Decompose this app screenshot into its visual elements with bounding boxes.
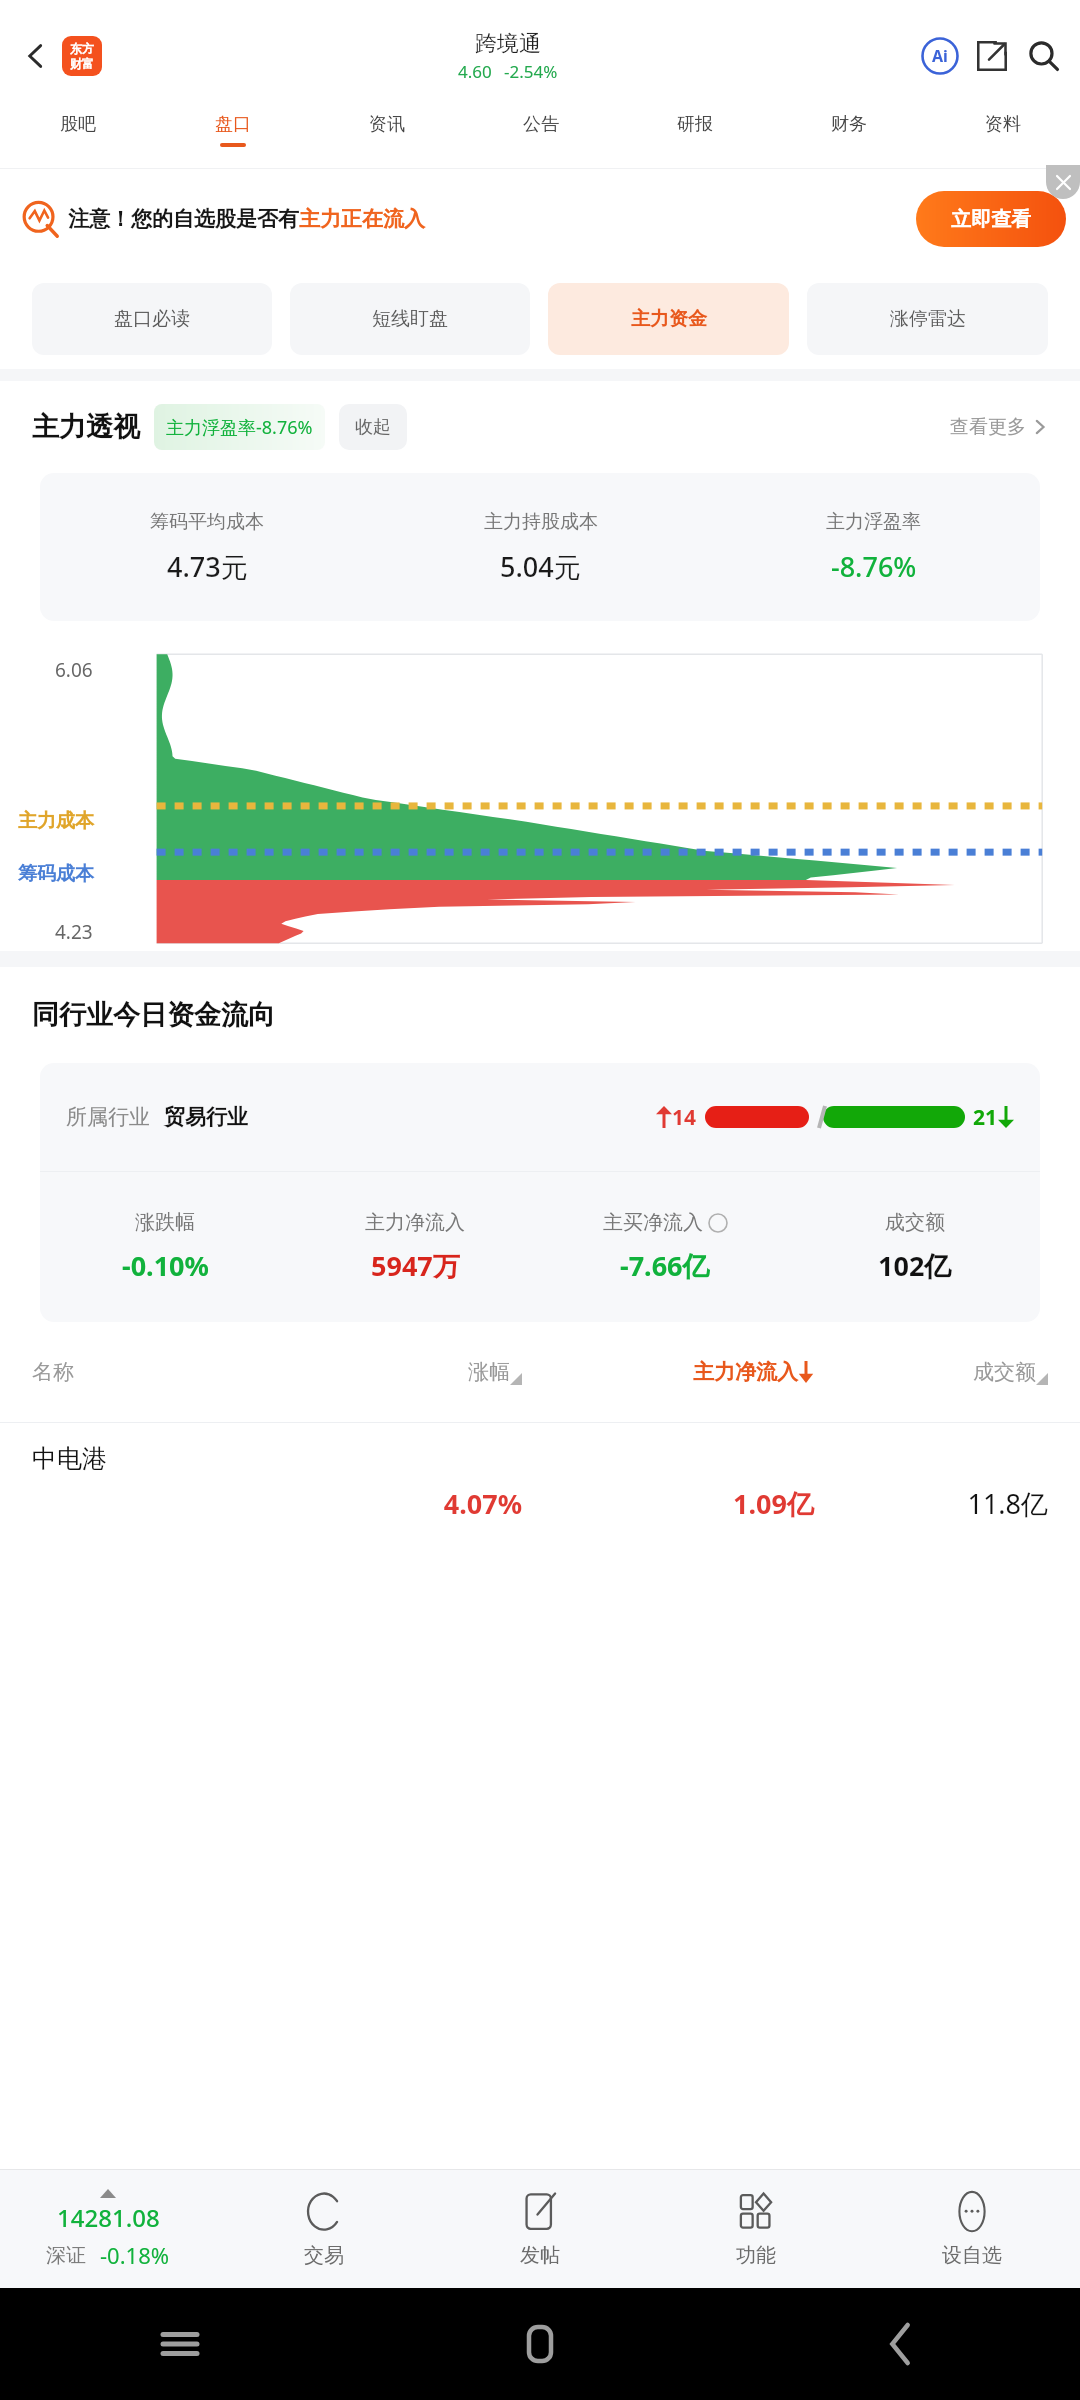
staticText: 所属行业 — [66, 1104, 150, 1130]
staticText: 4.73元 — [167, 548, 248, 585]
staticText: 主买净流入 — [603, 1210, 703, 1235]
staticText: 主力浮盈率-8.76% — [166, 415, 313, 440]
staticText: 发帖 — [520, 2243, 560, 2268]
staticText: 贸易行业 — [164, 1104, 248, 1130]
staticText: 短线盯盘 — [372, 307, 448, 331]
staticText: 主力透视 — [32, 410, 140, 444]
staticText: Ai — [932, 45, 948, 67]
button[interactable]: 立即查看 — [916, 191, 1066, 247]
staticText: 4.60 — [458, 60, 492, 83]
button[interactable]: 财务 — [772, 92, 926, 168]
staticText: 主力持股成本 — [484, 510, 598, 534]
staticText: 涨停雷达 — [890, 307, 966, 331]
staticText: 5947万 — [371, 1247, 460, 1284]
staticText: 盘口必读 — [114, 307, 190, 331]
button[interactable]: East Money — [62, 36, 102, 76]
staticText: 5.04元 — [500, 548, 581, 585]
staticText: -2.54% — [504, 60, 558, 83]
staticText: -0.10% — [122, 1247, 209, 1284]
staticText: 筹码平均成本 — [150, 510, 264, 534]
staticText: 主力净流入 — [365, 1210, 465, 1235]
staticText: 功能 — [736, 2243, 776, 2268]
button[interactable]: Search — [1018, 30, 1070, 82]
staticText: 名称 — [32, 1359, 288, 1385]
staticText: 查看更多 — [950, 415, 1026, 439]
staticText: 14281.08 — [57, 2201, 160, 2234]
staticText: 11.8亿 — [814, 1485, 1048, 1522]
staticText: 收起 — [355, 416, 391, 439]
button[interactable]: 主力资金 — [548, 283, 789, 355]
staticText: 股吧 — [60, 113, 96, 136]
staticText: 4.07% — [288, 1485, 522, 1522]
button[interactable]: 发帖 — [432, 2170, 648, 2288]
button[interactable]: 短线盯盘 — [290, 283, 530, 355]
staticText: 14 — [672, 1103, 697, 1132]
staticText: 主力资金 — [631, 307, 707, 331]
staticText: 交易 — [304, 2243, 344, 2268]
button[interactable]: 交易 — [216, 2170, 432, 2288]
staticText: -7.66亿 — [620, 1247, 710, 1284]
staticText: 同行业今日资金流向 — [32, 998, 275, 1032]
button[interactable]: 查看更多 — [950, 415, 1048, 439]
staticText: 资讯 — [369, 113, 405, 136]
staticText: 筹码成本 — [18, 862, 94, 886]
staticText: 6.06 — [55, 657, 93, 683]
button[interactable]: 主力净流入 — [522, 1359, 814, 1385]
staticText: 财务 — [831, 113, 867, 136]
staticText: 盘口 — [215, 113, 251, 136]
button[interactable]: 收起 — [339, 404, 407, 450]
staticText: 主力净流入 — [693, 1359, 798, 1385]
button[interactable]: 功能 — [648, 2170, 864, 2288]
staticText: 跨境通 — [475, 30, 541, 58]
button[interactable]: 涨停雷达 — [807, 283, 1048, 355]
staticText: 21 — [973, 1103, 998, 1132]
button[interactable]: 14281.08 — [0, 2170, 216, 2288]
button[interactable]: 成交额 — [814, 1359, 1048, 1385]
staticText: 设自选 — [942, 2243, 1002, 2268]
button[interactable]: Back — [10, 30, 62, 82]
staticText: 主力成本 — [18, 809, 94, 833]
staticText: 中电港 — [32, 1443, 288, 1474]
staticText: 东方 — [70, 41, 94, 56]
button[interactable]: 中电港 — [32, 1423, 1048, 2169]
staticText: 立即查看 — [951, 207, 1031, 232]
button[interactable]: AI assistant — [914, 30, 966, 82]
staticText: 1.09亿 — [522, 1485, 814, 1522]
button[interactable]: Share — [966, 30, 1018, 82]
staticText: 财富 — [70, 56, 94, 71]
button[interactable]: 涨幅 — [288, 1359, 522, 1385]
staticText: 研报 — [677, 113, 713, 136]
button[interactable]: 公告 — [464, 92, 618, 168]
button[interactable]: 研报 — [618, 92, 772, 168]
staticText: 深证 — [46, 2243, 86, 2268]
staticText: -0.18% — [100, 2240, 170, 2270]
button[interactable]: Close ad — [1046, 165, 1080, 199]
staticText: 102亿 — [878, 1247, 952, 1284]
staticText: 4.23 — [55, 919, 93, 945]
button[interactable]: 股吧 — [0, 92, 155, 168]
button[interactable]: 资讯 — [310, 92, 464, 168]
button[interactable]: 设自选 — [864, 2170, 1080, 2288]
staticText: 成交额 — [885, 1210, 945, 1235]
button[interactable]: 资料 — [926, 92, 1080, 168]
button[interactable]: 盘口 — [155, 92, 310, 168]
staticText: 涨跌幅 — [135, 1210, 195, 1235]
staticText: 公告 — [523, 113, 559, 136]
staticText: 成交额 — [973, 1359, 1036, 1385]
staticText: 主力浮盈率 — [826, 510, 921, 534]
staticText: 资料 — [985, 113, 1021, 136]
staticText: 主力正在流入 — [299, 206, 425, 232]
button[interactable]: 盘口必读 — [32, 283, 272, 355]
staticText: -8.76% — [831, 548, 917, 585]
staticText: 注意！您的自选股是否有 — [68, 206, 299, 232]
staticText: 涨幅 — [468, 1359, 510, 1385]
